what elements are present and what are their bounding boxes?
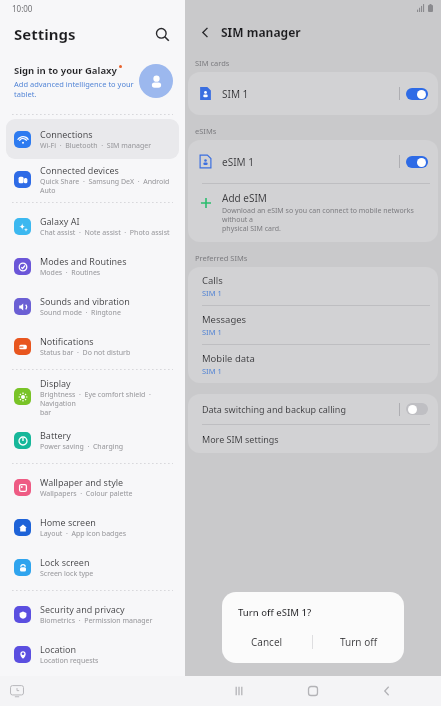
button[interactable]: Back	[367, 677, 407, 705]
button[interactable]: Lock screen	[6, 547, 179, 587]
staticText: Preferred SIMs	[195, 253, 248, 263]
staticText: Home screen	[40, 516, 96, 528]
button[interactable]: Data switching and backup calling	[188, 394, 438, 424]
button[interactable]: Connected devices	[6, 159, 179, 199]
button[interactable]: Back	[195, 22, 215, 42]
staticText: Sound mode · Ringtone	[40, 308, 121, 318]
staticText: Quick Share · Samsung DeX · Android Auto	[40, 177, 173, 195]
staticText: eSIMs	[195, 126, 217, 136]
staticText: More SIM settings	[202, 433, 279, 445]
staticText: Wi-Fi · Bluetooth · SIM manager	[40, 141, 152, 151]
staticText: 10:00	[12, 3, 33, 14]
staticText: Modes · Routines	[40, 268, 101, 278]
staticText: Layout · App icon badges	[40, 529, 127, 539]
staticText: Turn off eSIM 1?	[238, 606, 312, 619]
button[interactable]: eSIM 1	[188, 140, 438, 183]
staticText: Notifications	[40, 335, 94, 347]
staticText: Location	[40, 643, 77, 655]
staticText: Battery	[40, 429, 71, 441]
button[interactable]: Cancel	[222, 627, 312, 657]
staticText: Turn off	[340, 635, 378, 649]
button[interactable]: Messages	[188, 306, 438, 344]
staticText: SIM manager	[221, 24, 301, 40]
button[interactable]: Display	[6, 373, 179, 420]
staticText: SIM 1	[202, 288, 222, 298]
button[interactable]: Security and privacy	[6, 594, 179, 634]
staticText: Brightness · Eye comfort shield · Naviga…	[40, 390, 173, 417]
button[interactable]: Notifications	[6, 326, 179, 366]
button[interactable]: On	[406, 156, 428, 168]
staticText: Lock screen	[40, 556, 90, 568]
staticText: Sign in to your Galaxy	[14, 64, 117, 77]
staticText: Add eSIM	[222, 191, 267, 205]
staticText: Display	[40, 377, 71, 389]
staticText: Connections	[40, 128, 93, 140]
staticText: SIM 1	[202, 366, 222, 376]
staticText: Status bar · Do not disturb	[40, 348, 131, 358]
button[interactable]: SIM 1	[188, 72, 438, 115]
button[interactable]: Galaxy AI	[6, 206, 179, 246]
staticText: SIM cards	[195, 58, 230, 68]
staticText: SIM 1	[222, 87, 399, 101]
button[interactable]: Sign in to your Galaxy	[0, 52, 185, 110]
staticText: Screen lock type	[40, 569, 94, 579]
staticText: Modes and Routines	[40, 255, 127, 267]
button[interactable]: Recents	[219, 677, 259, 705]
staticText: Mobile data	[202, 352, 255, 365]
staticText: Calls	[202, 274, 223, 287]
staticText: Wallpaper and style	[40, 476, 124, 488]
button[interactable]: Add eSIM	[188, 184, 438, 242]
button[interactable]: Home	[293, 677, 333, 705]
button[interactable]: Screen recorder	[8, 682, 26, 700]
staticText: Cancel	[251, 635, 283, 649]
button[interactable]: Calls	[188, 267, 438, 305]
button[interactable]: Location	[6, 634, 179, 674]
button[interactable]: Battery	[6, 420, 179, 460]
staticText: Messages	[202, 313, 247, 326]
staticText: Chat assist · Note assist · Photo assist	[40, 228, 170, 238]
staticText: Location requests	[40, 656, 99, 666]
staticText: SIM 1	[202, 327, 222, 337]
staticText: Add advanced intelligence to your tablet…	[14, 79, 134, 99]
button[interactable]: Modes and Routines	[6, 246, 179, 286]
button[interactable]: More SIM settings	[188, 425, 438, 453]
button[interactable]: Search	[151, 23, 173, 45]
button[interactable]: Wallpaper and style	[6, 467, 179, 507]
staticText: eSIM 1	[222, 155, 399, 169]
staticText: Galaxy AI	[40, 215, 80, 227]
staticText: Sounds and vibration	[40, 295, 130, 307]
button[interactable]: Mobile data	[188, 345, 438, 383]
button[interactable]: Turn off	[313, 627, 404, 657]
staticText: Settings	[14, 24, 76, 44]
button[interactable]: Connections	[6, 119, 179, 159]
button[interactable]: On	[406, 88, 428, 100]
staticText: Power saving · Charging	[40, 442, 124, 452]
staticText: Security and privacy	[40, 603, 125, 615]
staticText: Data switching and backup calling	[202, 403, 399, 415]
button[interactable]: Safety and emergency	[6, 674, 179, 696]
button[interactable]: Home screen	[6, 507, 179, 547]
staticText: Download an eSIM so you can connect to m…	[222, 206, 426, 233]
staticText: Connected devices	[40, 164, 119, 176]
staticText: Wallpapers · Colour palette	[40, 489, 133, 499]
staticText: Biometrics · Permission manager	[40, 616, 153, 626]
button[interactable]: Off	[406, 403, 428, 415]
button[interactable]: Sounds and vibration	[6, 286, 179, 326]
